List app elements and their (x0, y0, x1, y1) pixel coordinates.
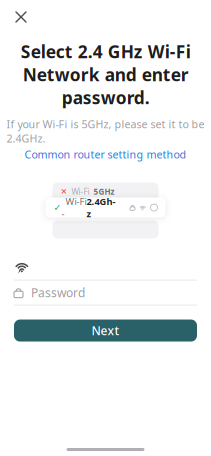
staticText: 5GHz (93, 186, 114, 197)
staticText: ✓ (53, 202, 61, 213)
staticText: Wi-Fi (71, 186, 89, 197)
staticText: Wi-Fi - (61, 195, 86, 220)
button[interactable]: Next (14, 320, 197, 342)
button[interactable]: Close (6, 2, 36, 32)
staticText: Select 2.4 GHz Wi-Fi Network and enter p… (20, 40, 190, 109)
staticText: If your Wi-Fi is 5GHz, please set it to … (6, 117, 204, 145)
staticText: ✕ (60, 187, 67, 196)
staticText: Common router setting method (24, 147, 186, 162)
staticText: Password (31, 285, 85, 300)
button[interactable]: Common router setting method (24, 147, 186, 162)
staticText: Next (91, 323, 119, 338)
staticText: 2.4Ghz (86, 195, 115, 220)
